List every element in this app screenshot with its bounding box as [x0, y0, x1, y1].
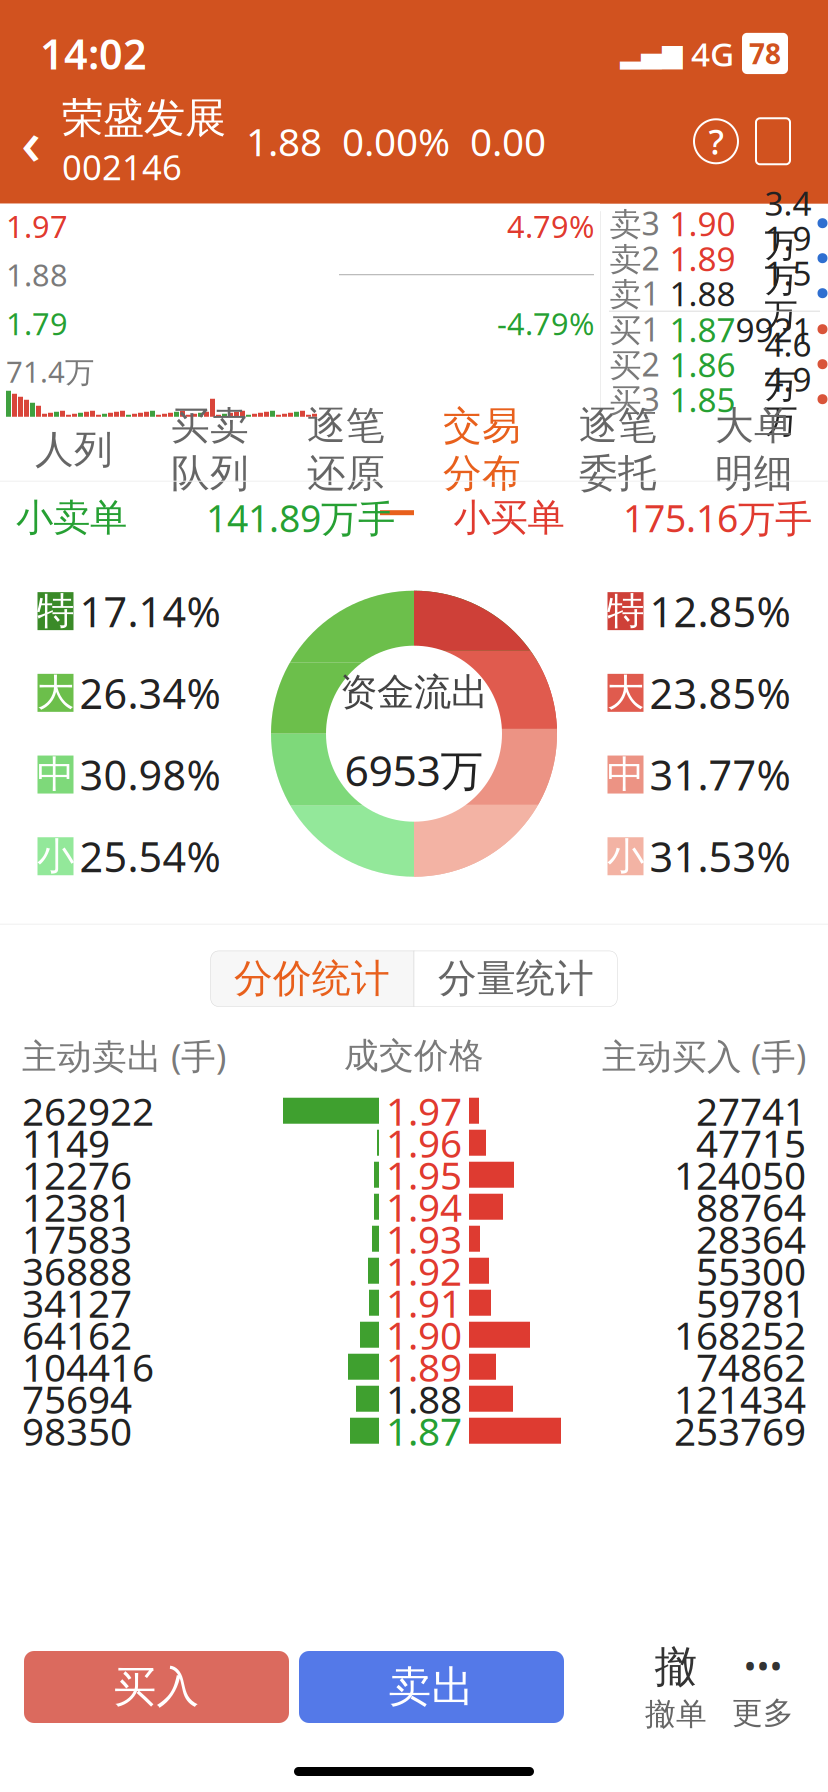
staticText: 12381 [22, 1181, 132, 1232]
staticText: ‹ [21, 101, 41, 182]
button[interactable]: 交易分布 [414, 402, 550, 497]
staticText: 26.34% [79, 665, 220, 720]
staticText: 34127 [22, 1277, 132, 1328]
staticText: 88764 [696, 1181, 806, 1232]
staticText: 17583 [22, 1213, 132, 1264]
staticText: 12.85% [649, 584, 790, 639]
button[interactable]: 分价统计 [210, 951, 413, 1007]
staticText: 小买单 [453, 495, 564, 541]
staticText: 逐笔委托 [579, 402, 657, 497]
staticText: -4.79% [497, 303, 594, 344]
staticText: 买2 [609, 343, 659, 385]
staticText: 小 [37, 833, 74, 879]
button[interactable]: ••• [718, 1647, 808, 1727]
staticText: 1.91 [386, 1277, 462, 1328]
staticText: 1.90 [386, 1309, 462, 1360]
staticText: 28364 [696, 1213, 806, 1264]
staticText: 主动买入 (手) [602, 1033, 806, 1079]
staticText: 人列 [35, 426, 113, 473]
staticText: 荣盛发展 [62, 93, 226, 144]
staticText: 141.89万手 [206, 493, 395, 542]
staticText: 更多 [732, 1694, 794, 1732]
staticText: 1.94 [386, 1181, 462, 1232]
staticText: ▂▄▆ [620, 38, 683, 69]
staticText: 买卖队列 [171, 402, 249, 497]
staticText: 175.16万手 [623, 493, 812, 542]
staticText: 1.97 [6, 206, 68, 246]
button[interactable]: Compare [738, 118, 808, 164]
staticText: 4.9万 [764, 357, 811, 442]
staticText: 小 [607, 833, 644, 879]
staticText: 大 [37, 670, 74, 716]
staticText: 253769 [674, 1405, 806, 1456]
staticText: 98350 [22, 1405, 132, 1456]
staticText: 卖出 [388, 1661, 474, 1713]
button[interactable]: 买入 [24, 1651, 289, 1723]
button[interactable]: 撤 [634, 1647, 718, 1727]
staticText: 1.93 [386, 1213, 462, 1264]
staticText: 71.4万 [6, 352, 94, 391]
staticText: 1.88 [669, 271, 735, 315]
staticText: 1.85 [669, 377, 735, 421]
staticText: 交易分布 [443, 402, 521, 497]
staticText: 1.89 [386, 1341, 462, 1392]
staticText: 大 [607, 670, 644, 716]
staticText: 64162 [22, 1309, 132, 1360]
staticText: 卖3 [609, 202, 659, 244]
staticText: 262922 [22, 1085, 154, 1136]
staticText: 121434 [674, 1373, 806, 1424]
staticText: 1.87 [386, 1405, 462, 1456]
staticText: 23.85% [649, 665, 790, 720]
staticText: 27741 [696, 1085, 806, 1136]
staticText: 资金流出 [340, 669, 488, 715]
staticText: 1.92 [386, 1245, 462, 1296]
button[interactable]: 分量统计 [414, 951, 617, 1007]
staticText: 1.79 [6, 303, 68, 344]
staticText: 75694 [22, 1373, 132, 1424]
staticText: 31.77% [649, 747, 790, 802]
staticText: 78 [749, 35, 781, 72]
staticText: 31.53% [649, 829, 790, 884]
staticText: 25.54% [79, 829, 220, 884]
button[interactable]: Help [694, 119, 738, 163]
staticText: ? [708, 118, 723, 164]
staticText: 1149 [22, 1117, 110, 1168]
staticText: 1.5万 [764, 251, 811, 336]
staticText: 4.79% [507, 206, 594, 246]
staticText: 36888 [22, 1245, 132, 1296]
staticText: 4G [691, 31, 734, 76]
staticText: 74862 [696, 1341, 806, 1392]
staticText: 大单明细 [715, 402, 793, 497]
staticText: 1.9万 [764, 216, 811, 301]
staticText: 124050 [674, 1149, 806, 1200]
button[interactable]: 卖出 [299, 1651, 564, 1723]
button[interactable]: 买卖队列 [142, 402, 278, 497]
staticText: 3.4万 [764, 181, 811, 266]
staticText: 撤 [654, 1641, 697, 1693]
staticText: 104416 [22, 1341, 154, 1392]
button[interactable]: Back [0, 110, 62, 172]
staticText: 分价统计 [234, 955, 390, 1002]
staticText: 1.87 [669, 307, 735, 351]
staticText: 卖2 [609, 237, 659, 279]
button[interactable]: 大单明细 [686, 402, 822, 497]
staticText: 12276 [22, 1149, 132, 1200]
button[interactable]: 人列 [6, 426, 142, 473]
staticText: 1.88 0.00% 0.00 [246, 116, 546, 167]
staticText: 成交价格 [344, 1034, 484, 1077]
button[interactable]: 逐笔还原 [278, 402, 414, 497]
staticText: 特 [37, 588, 74, 634]
staticText: 30.98% [79, 747, 220, 802]
staticText: 47715 [696, 1117, 806, 1168]
staticText: 买3 [609, 378, 659, 420]
staticText: 1.89 [669, 236, 735, 280]
staticText: 特 [607, 588, 644, 634]
staticText: 分量统计 [438, 955, 594, 1002]
button[interactable]: 逐笔委托 [550, 402, 686, 497]
staticText: 卖1 [609, 272, 659, 314]
staticText: ••• [743, 1642, 782, 1688]
staticText: 168252 [674, 1309, 806, 1360]
staticText: 1.88 [386, 1373, 462, 1424]
staticText: 59781 [696, 1277, 806, 1328]
staticText: 17.14% [79, 584, 220, 639]
